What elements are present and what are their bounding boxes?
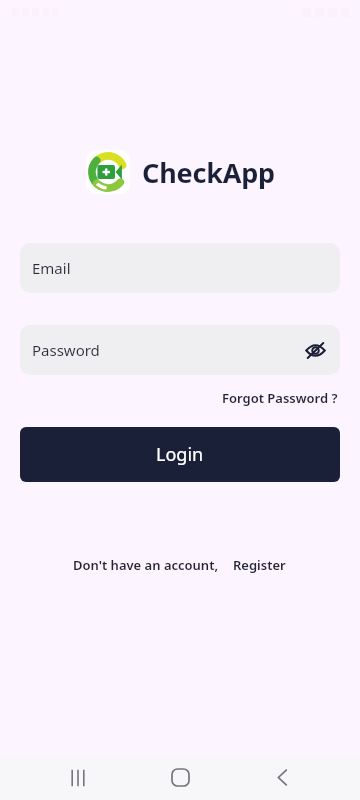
button[interactable]: Forgot Password ? [220,387,340,409]
button[interactable]: Login [20,427,340,482]
staticText: Don't have an account, [73,556,219,574]
button[interactable]: Register [231,554,288,576]
staticText: Login [156,442,204,467]
button[interactable]: Home [156,755,204,800]
staticText: Email [32,258,71,278]
staticText: Password [32,340,100,360]
staticText: Register [233,556,286,574]
button[interactable]: Email [20,243,340,293]
button[interactable]: Show password [300,335,330,365]
button[interactable]: Back [258,755,306,800]
staticText: CheckApp [142,154,275,191]
staticText: Forgot Password ? [222,389,338,407]
button[interactable]: Password [20,325,340,375]
button[interactable]: Recent apps [54,755,102,800]
